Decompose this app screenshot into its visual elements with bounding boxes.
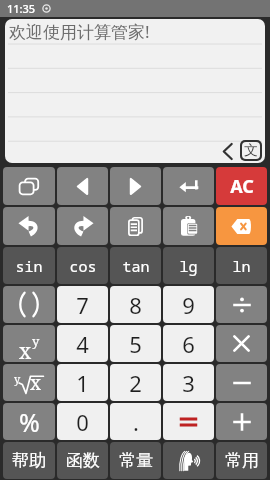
button[interactable]: 帮助	[3, 442, 55, 479]
staticText: 5	[129, 329, 142, 359]
button[interactable]: Undo	[3, 207, 55, 245]
staticText: 9	[182, 290, 195, 320]
staticText: 3	[182, 368, 195, 398]
button[interactable]: Parentheses	[3, 286, 55, 323]
staticText: ln	[232, 256, 251, 276]
button[interactable]: Equals	[163, 403, 214, 440]
button[interactable]: Backspace	[216, 207, 267, 245]
button[interactable]: 1	[57, 364, 108, 401]
staticText: 常用	[225, 450, 259, 471]
button[interactable]: 常量	[110, 442, 161, 479]
button[interactable]: Move left	[57, 167, 108, 205]
staticText: AC	[230, 174, 254, 199]
staticText: tan	[122, 256, 150, 276]
button[interactable]: %	[3, 403, 55, 440]
button[interactable]: Paste	[163, 207, 214, 245]
staticText: 常量	[119, 450, 153, 471]
button[interactable]: Back	[218, 140, 236, 162]
button[interactable]: 8	[110, 286, 161, 323]
button[interactable]: cos	[57, 247, 108, 284]
button[interactable]: 0	[57, 403, 108, 440]
staticText: 1	[76, 368, 89, 398]
staticText: 6	[182, 329, 195, 359]
button[interactable]: lg	[163, 247, 214, 284]
button[interactable]: Redo	[57, 207, 108, 245]
button[interactable]: x to the power of y	[3, 325, 55, 362]
button[interactable]: 7	[57, 286, 108, 323]
staticText: %	[19, 405, 40, 439]
staticText: 2	[129, 368, 142, 398]
button[interactable]: 3	[163, 364, 214, 401]
button[interactable]: 6	[163, 325, 214, 362]
staticText: 4	[76, 329, 89, 359]
staticText: cos	[69, 256, 97, 276]
staticText: y	[32, 332, 40, 350]
button[interactable]: Enter	[163, 167, 214, 205]
staticText: sin	[15, 256, 43, 276]
staticText: 0	[76, 407, 89, 437]
button[interactable]: 4	[57, 325, 108, 362]
button[interactable]: .	[110, 403, 161, 440]
button[interactable]: 函数	[57, 442, 108, 479]
staticText: 欢迎使用计算管家!	[9, 20, 150, 43]
button[interactable]: 5	[110, 325, 161, 362]
button[interactable]: Move right	[110, 167, 161, 205]
button[interactable]: 9	[163, 286, 214, 323]
button[interactable]: Copy	[3, 167, 55, 205]
button[interactable]: AC	[216, 167, 267, 205]
staticText: 文	[244, 142, 258, 159]
button[interactable]: Copy text	[110, 207, 161, 245]
staticText: 函数	[66, 450, 100, 471]
button[interactable]: Divide	[216, 286, 267, 323]
button[interactable]: Plus	[216, 403, 267, 440]
button[interactable]: y-th root of x	[3, 364, 55, 401]
staticText: 帮助	[12, 450, 46, 471]
staticText: 11:35	[7, 1, 36, 16]
button[interactable]: 常用	[216, 442, 267, 479]
staticText: 8	[129, 290, 142, 320]
staticText: .	[133, 407, 139, 437]
staticText: x	[30, 370, 41, 396]
button[interactable]: Multiply	[216, 325, 267, 362]
staticText: lg	[179, 256, 198, 276]
button[interactable]: Minus	[216, 364, 267, 401]
staticText: 7	[76, 290, 89, 320]
staticText: x	[19, 337, 32, 362]
button[interactable]: Speak	[163, 442, 214, 479]
button[interactable]: tan	[110, 247, 161, 284]
staticText: y	[14, 371, 21, 386]
button[interactable]: sin	[3, 247, 55, 284]
button[interactable]: ln	[216, 247, 267, 284]
button[interactable]: Language	[239, 139, 263, 162]
button[interactable]: 2	[110, 364, 161, 401]
